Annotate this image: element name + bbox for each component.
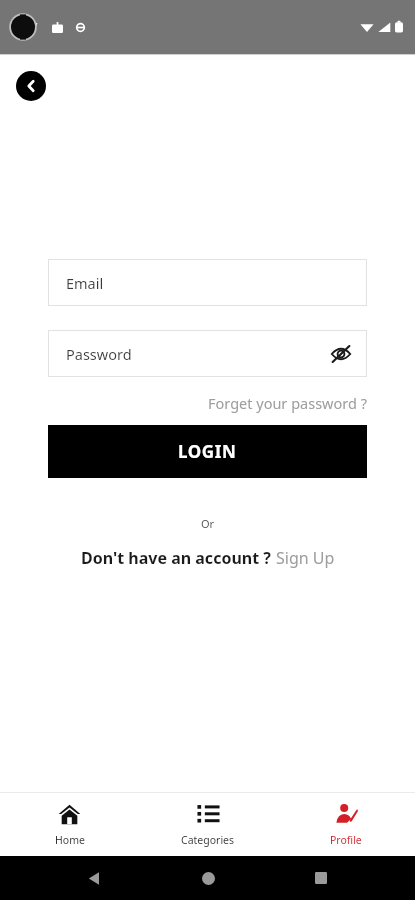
button[interactable]: Home: [0, 793, 139, 856]
staticText: LOGIN: [178, 440, 237, 463]
button[interactable]: Home: [188, 858, 228, 898]
staticText: Categories: [181, 833, 235, 847]
button[interactable]: Profile: [277, 793, 415, 856]
staticText: Sign Up: [276, 547, 335, 569]
staticText: Don't have an account ?: [81, 547, 271, 569]
staticText: 2:07: [12, 18, 38, 36]
staticText: Forget your password ?: [208, 393, 367, 413]
button[interactable]: Email: [48, 259, 367, 306]
button[interactable]: Back: [16, 71, 46, 101]
button[interactable]: Recents: [301, 858, 341, 898]
button[interactable]: LOGIN: [48, 425, 367, 478]
button[interactable]: Forget your password ?: [208, 389, 367, 417]
staticText: Password: [66, 344, 132, 364]
staticText: Profile: [330, 833, 362, 847]
button[interactable]: Show password: [327, 340, 355, 368]
button[interactable]: Password: [48, 330, 367, 377]
button[interactable]: Categories: [139, 793, 277, 856]
staticText: Email: [66, 273, 104, 293]
button[interactable]: Sign Up: [276, 547, 335, 569]
button[interactable]: Back: [74, 858, 114, 898]
staticText: Home: [55, 833, 85, 847]
staticText: Or: [201, 516, 215, 531]
